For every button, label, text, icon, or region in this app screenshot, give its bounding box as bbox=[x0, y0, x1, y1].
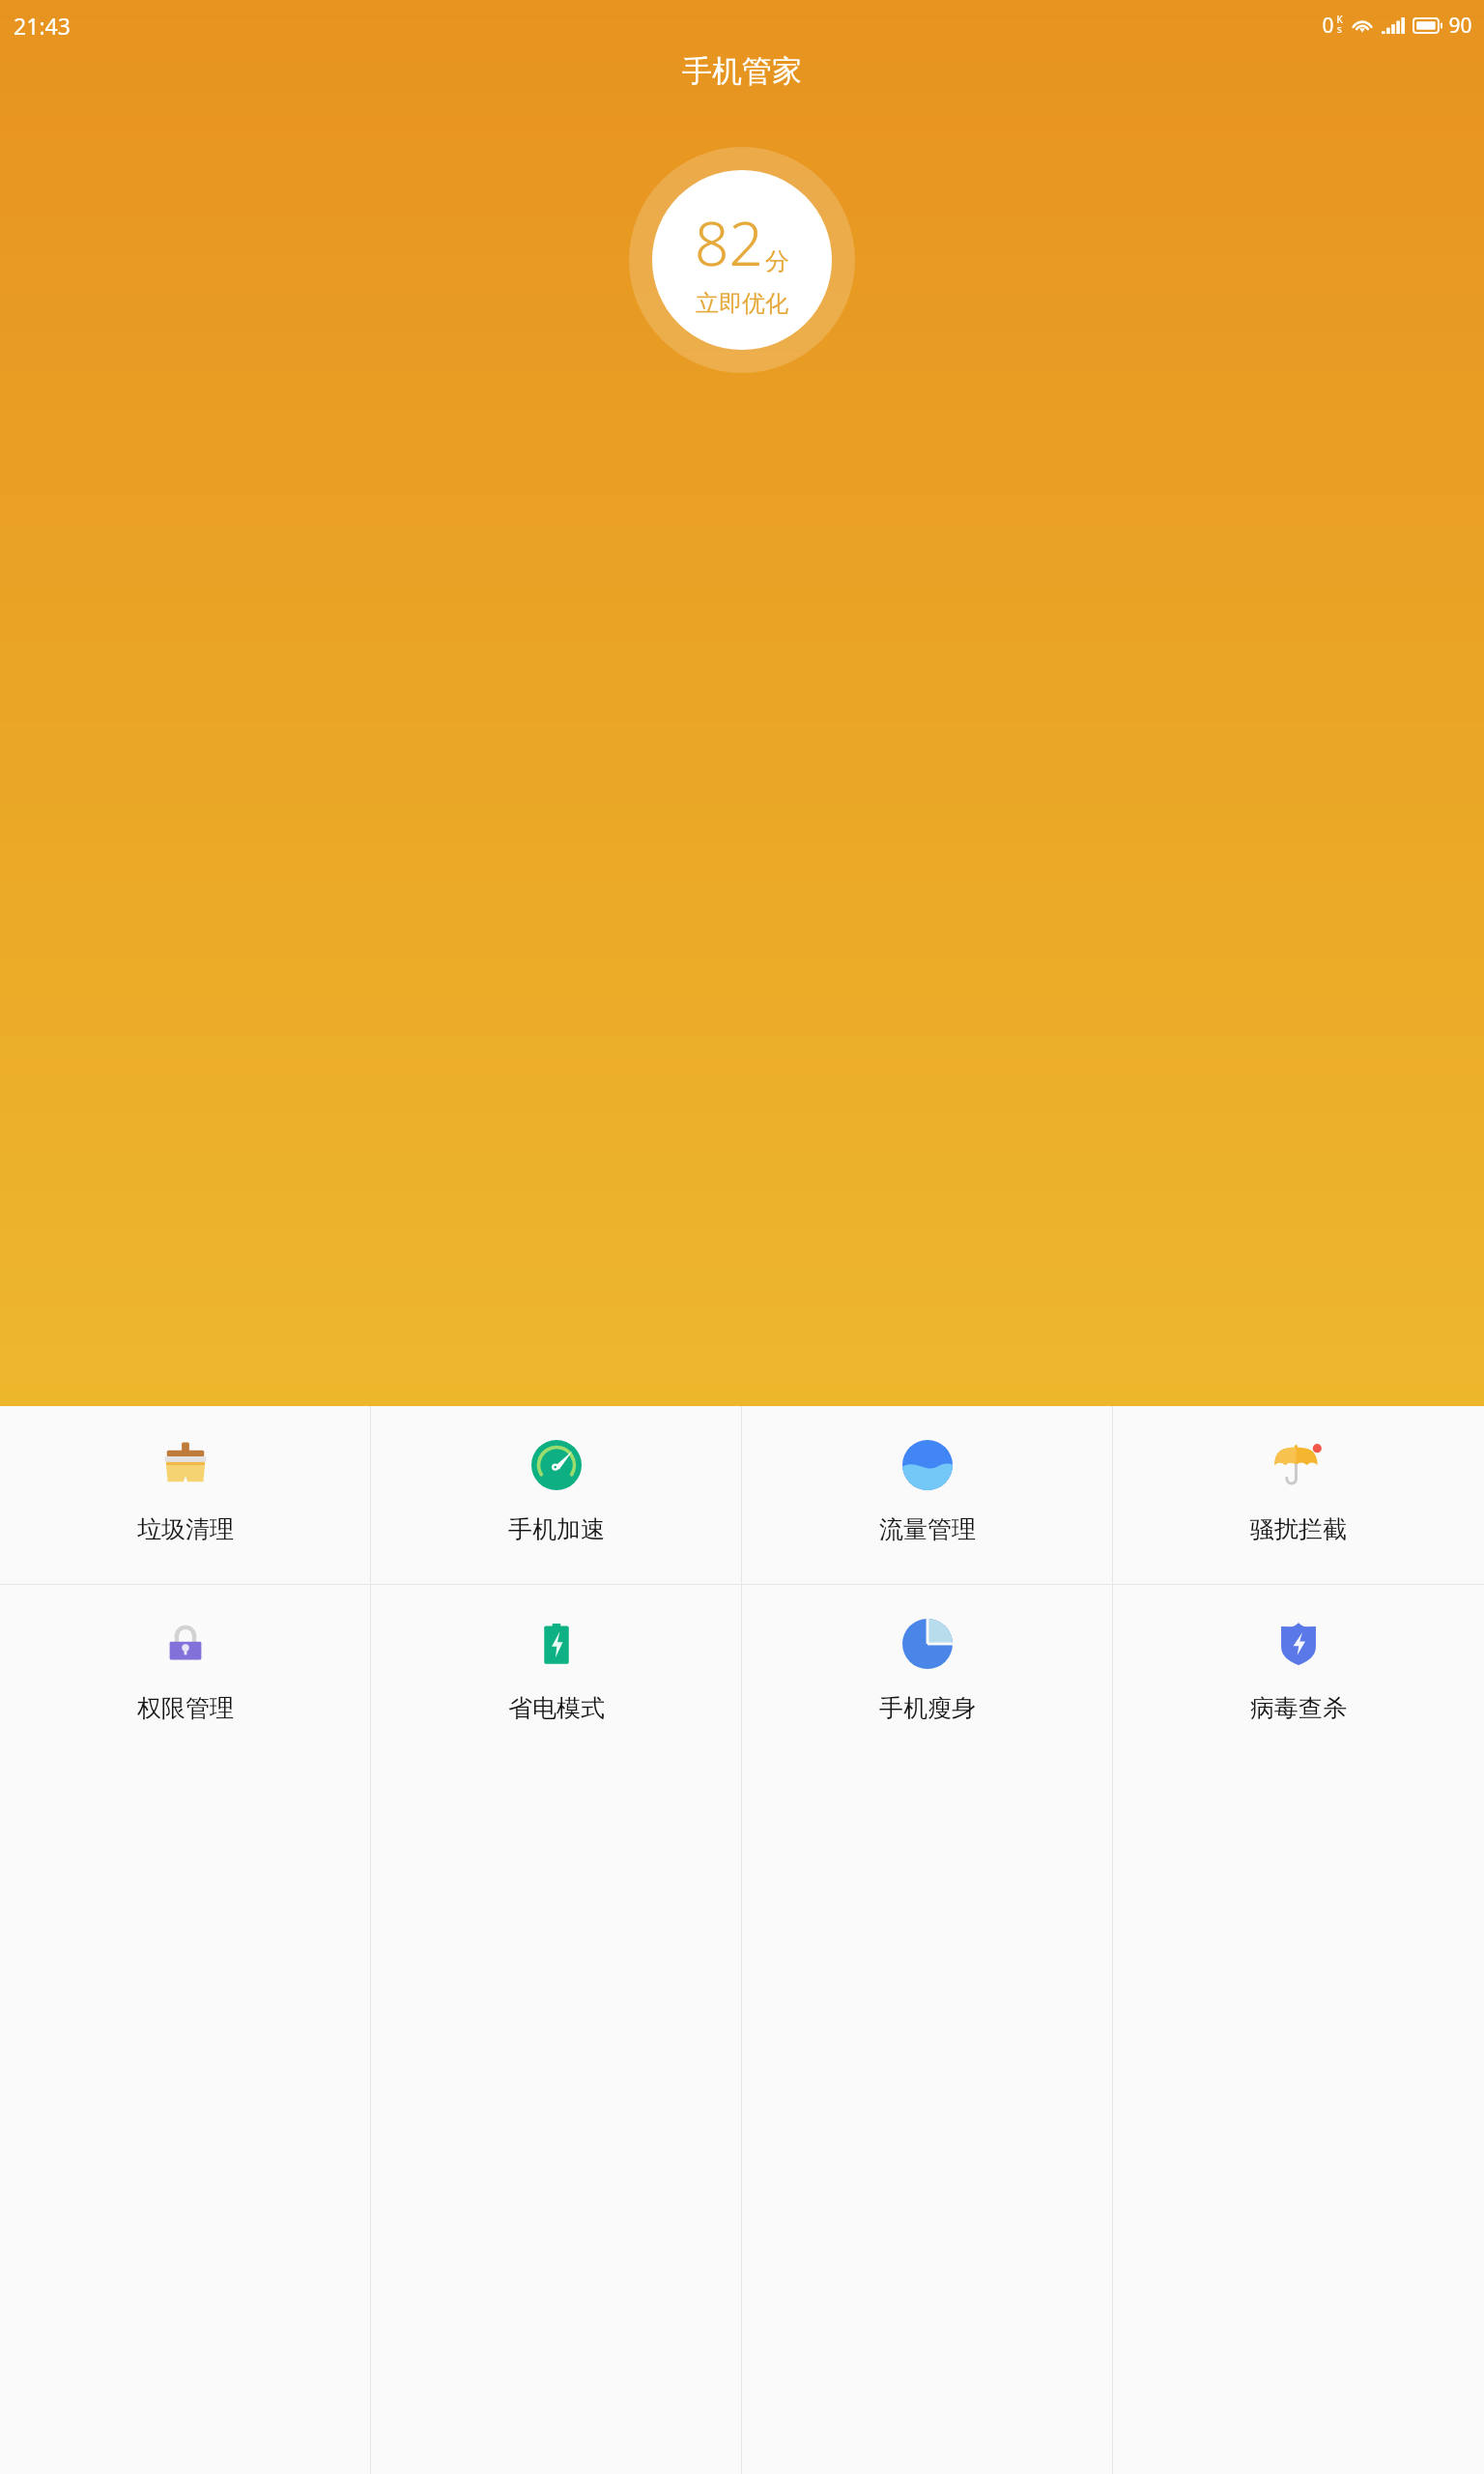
staticText: s bbox=[1337, 22, 1342, 36]
other: 病毒查杀 bbox=[1273, 1619, 1324, 1669]
button[interactable]: 手机加速 bbox=[371, 1406, 742, 1584]
other: 骚扰拦截 bbox=[1271, 1438, 1326, 1492]
staticText: 21:43 bbox=[14, 11, 71, 41]
other: 流量管理 bbox=[902, 1440, 953, 1490]
staticText: K bbox=[1336, 13, 1343, 26]
button[interactable]: 垃圾清理 bbox=[0, 1406, 371, 1584]
button[interactable]: 病毒查杀 bbox=[1113, 1585, 1484, 1763]
staticText: 手机加速 bbox=[508, 1514, 605, 1544]
button[interactable]: 82 bbox=[629, 147, 855, 373]
other: 手机加速 bbox=[531, 1440, 582, 1490]
other: 权限管理 bbox=[160, 1619, 211, 1669]
staticText: 流量管理 bbox=[879, 1514, 976, 1544]
staticText: 骚扰拦截 bbox=[1250, 1514, 1347, 1544]
staticText: 手机管家 bbox=[682, 52, 802, 90]
button[interactable]: 流量管理 bbox=[742, 1406, 1113, 1584]
button[interactable]: 手机瘦身 bbox=[742, 1585, 1113, 1763]
staticText: 立即优化 bbox=[696, 289, 788, 318]
staticText: 分 bbox=[765, 246, 789, 276]
other: 省电模式 bbox=[531, 1619, 582, 1669]
other: 垃圾清理 bbox=[160, 1440, 211, 1490]
staticText: 省电模式 bbox=[508, 1693, 605, 1723]
staticText: 垃圾清理 bbox=[137, 1514, 234, 1544]
staticText: 82 bbox=[695, 202, 763, 283]
button[interactable]: 骚扰拦截 bbox=[1113, 1406, 1484, 1584]
other: 手机瘦身 bbox=[902, 1619, 953, 1669]
staticText: 手机瘦身 bbox=[879, 1693, 976, 1723]
button[interactable]: 省电模式 bbox=[371, 1585, 742, 1763]
staticText: 权限管理 bbox=[137, 1693, 234, 1723]
staticText: 90 bbox=[1448, 12, 1472, 40]
staticText: 0 bbox=[1322, 12, 1334, 40]
staticText: 病毒查杀 bbox=[1250, 1693, 1347, 1723]
button[interactable]: 权限管理 bbox=[0, 1585, 371, 1763]
